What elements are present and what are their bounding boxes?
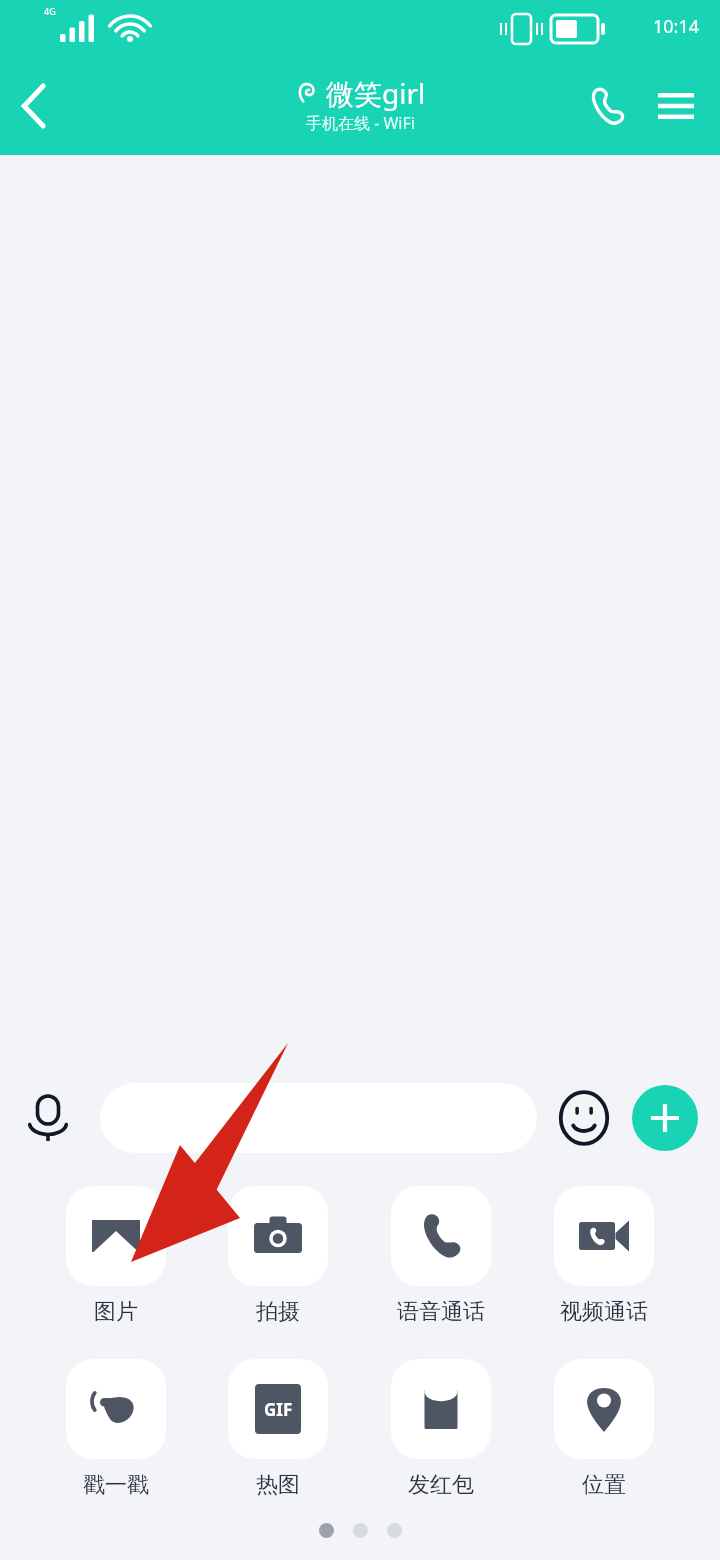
button[interactable]: Emoji: [550, 1084, 618, 1152]
button[interactable]: 微笑girl: [295, 74, 426, 134]
staticText: 图片: [94, 1298, 138, 1326]
staticText: 4G: [44, 5, 56, 17]
staticText: 微笑girl: [326, 74, 426, 112]
staticText: 视频通话: [560, 1298, 648, 1326]
staticText: 10:14: [653, 14, 700, 39]
button[interactable]: 戳一戳: [35, 1359, 197, 1499]
staticText: 热图: [256, 1471, 300, 1499]
button[interactable]: 视频通话: [522, 1186, 685, 1326]
button[interactable]: 语音通话: [359, 1186, 522, 1326]
staticText: 手机在线 - WiFi: [306, 112, 415, 134]
staticText: 位置: [582, 1471, 626, 1499]
button[interactable]: Voice input: [8, 1078, 88, 1158]
button[interactable]: 图片: [35, 1186, 197, 1326]
button[interactable]: [100, 1083, 537, 1153]
staticText: 语音通话: [397, 1298, 485, 1326]
staticText: GIF: [264, 1398, 293, 1421]
button[interactable]: Back: [0, 70, 72, 142]
button[interactable]: 发红包: [359, 1359, 522, 1499]
button[interactable]: 位置: [522, 1359, 685, 1499]
button[interactable]: Menu: [646, 76, 706, 136]
button[interactable]: More: [632, 1085, 698, 1151]
staticText: 拍摄: [256, 1298, 300, 1326]
button[interactable]: 拍摄: [197, 1186, 359, 1326]
staticText: 戳一戳: [83, 1471, 149, 1499]
staticText: 发红包: [408, 1471, 474, 1499]
button[interactable]: GIF: [197, 1359, 359, 1499]
button[interactable]: Call: [578, 76, 638, 136]
